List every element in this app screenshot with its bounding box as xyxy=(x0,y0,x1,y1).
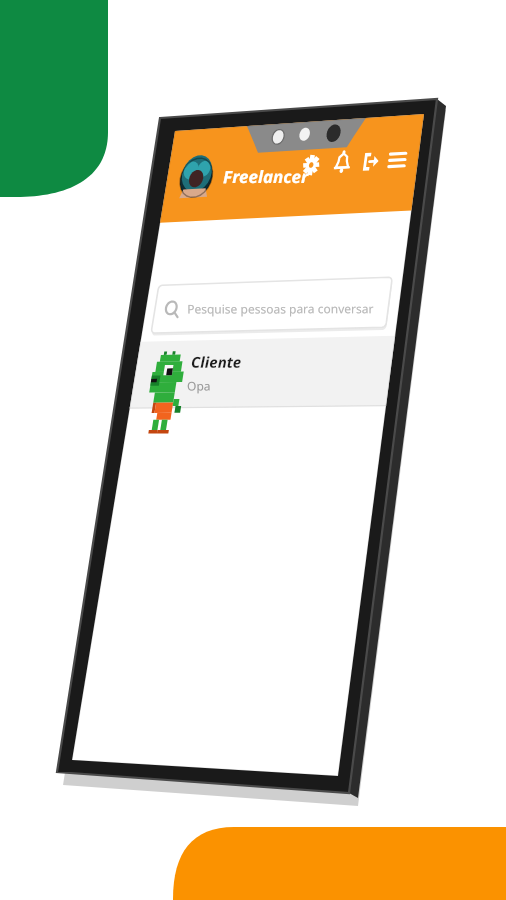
button[interactable]: Notifications xyxy=(328,128,358,166)
button[interactable]: Profile avatar xyxy=(175,128,233,182)
button[interactable]: Log out xyxy=(357,126,389,164)
button[interactable]: Chat with Cliente xyxy=(150,288,390,354)
button[interactable]: Search people to chat xyxy=(163,240,381,288)
button[interactable]: Menu xyxy=(387,124,423,162)
button[interactable]: Settings xyxy=(300,130,330,168)
